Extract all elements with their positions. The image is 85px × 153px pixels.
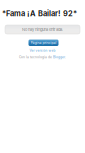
staticText: . bbox=[65, 55, 66, 59]
staticText: *Fama ¡A Bailar! 92* bbox=[2, 9, 77, 18]
staticText: Página principal bbox=[30, 41, 56, 45]
staticText: Blogger bbox=[53, 55, 65, 59]
button[interactable]: Página principal bbox=[28, 39, 58, 46]
staticText: Con la tecnología de bbox=[19, 55, 53, 59]
staticText: Ver versión web bbox=[29, 49, 55, 52]
button[interactable]: Ver versión web bbox=[0, 48, 85, 52]
staticText: No hay ninguna entrada. bbox=[22, 27, 63, 32]
